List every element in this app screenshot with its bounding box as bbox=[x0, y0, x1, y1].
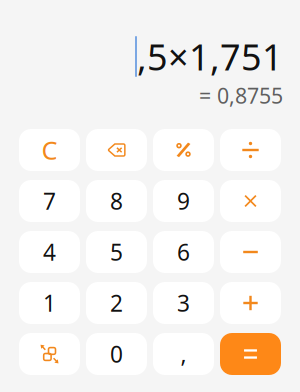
staticText: 8 bbox=[110, 186, 123, 216]
button[interactable]: , bbox=[153, 333, 214, 375]
staticText: , bbox=[180, 339, 186, 369]
button[interactable]: Minus bbox=[220, 231, 281, 273]
staticText: 7 bbox=[43, 186, 56, 216]
staticText: 0 bbox=[110, 339, 123, 369]
button[interactable]: 4 bbox=[19, 231, 80, 273]
button[interactable]: 2 bbox=[86, 282, 147, 324]
staticText: 6 bbox=[177, 237, 190, 267]
button[interactable]: Equals bbox=[220, 333, 281, 375]
staticText: = 0,8755 bbox=[199, 81, 283, 110]
button[interactable]: 3 bbox=[153, 282, 214, 324]
button[interactable]: C bbox=[19, 129, 80, 171]
staticText: 9 bbox=[177, 186, 190, 216]
button[interactable]: 9 bbox=[153, 180, 214, 222]
button[interactable]: 7 bbox=[19, 180, 80, 222]
button[interactable]: Multiply bbox=[220, 180, 281, 222]
button[interactable]: Percent bbox=[153, 129, 214, 171]
staticText: 1 bbox=[43, 288, 56, 318]
button[interactable]: Divide bbox=[220, 129, 281, 171]
staticText: C bbox=[41, 133, 57, 167]
staticText: 4 bbox=[43, 237, 56, 267]
button[interactable]: 6 bbox=[153, 231, 214, 273]
button[interactable]: 5 bbox=[86, 231, 147, 273]
button[interactable]: 0 bbox=[86, 333, 147, 375]
staticText: 5 bbox=[110, 237, 123, 267]
staticText: 2 bbox=[110, 288, 123, 318]
button[interactable]: Delete bbox=[86, 129, 147, 171]
button[interactable]: 1 bbox=[19, 282, 80, 324]
button[interactable]: Plus bbox=[220, 282, 281, 324]
staticText: 3 bbox=[177, 288, 190, 318]
button[interactable]: 8 bbox=[86, 180, 147, 222]
staticText: ,5×1,751 bbox=[137, 33, 283, 80]
button[interactable]: Convert units bbox=[19, 333, 80, 375]
